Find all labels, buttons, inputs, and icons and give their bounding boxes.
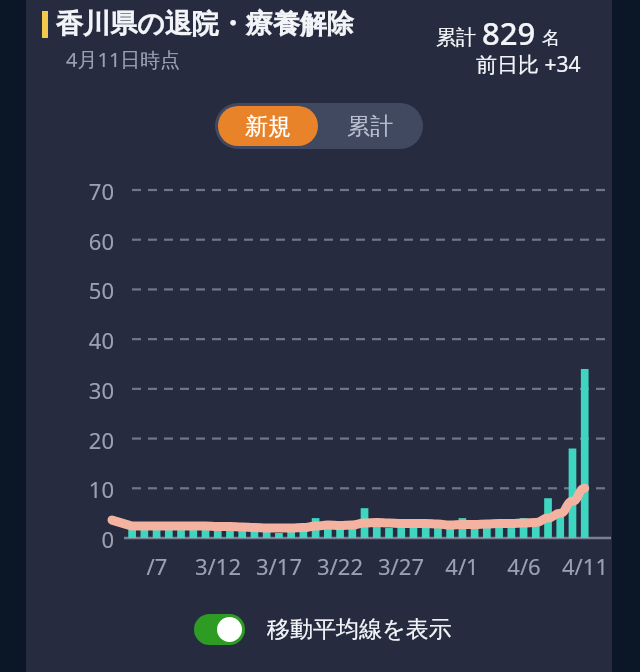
button[interactable]: 新規 <box>218 106 318 146</box>
staticText: 0 <box>62 524 114 554</box>
staticText: 4/1 <box>427 551 497 581</box>
staticText: 40 <box>62 325 114 355</box>
staticText: 香川県の退院・療養解除 <box>56 7 354 41</box>
staticText: 3/27 <box>366 551 436 581</box>
staticText: 10 <box>62 474 114 504</box>
staticText: 60 <box>62 226 114 256</box>
staticText: 累計 <box>347 112 393 141</box>
staticText: 3/22 <box>305 551 375 581</box>
staticText: 3/17 <box>244 551 314 581</box>
other: 移動平均線を表示 トグル <box>194 614 245 645</box>
staticText: 4月11日時点 <box>66 46 181 73</box>
staticText: 829 <box>482 12 536 54</box>
staticText: 4/6 <box>489 551 559 581</box>
staticText: 4/11 <box>550 551 620 581</box>
staticText: 累計 <box>436 25 476 50</box>
staticText: 新規 <box>245 112 291 141</box>
staticText: 移動平均線を表示 <box>267 615 452 644</box>
staticText: 50 <box>62 275 114 305</box>
staticText: 20 <box>62 425 114 455</box>
staticText: /7 <box>122 551 192 581</box>
staticText: 70 <box>62 176 114 206</box>
staticText: 3/12 <box>183 551 253 581</box>
button[interactable]: 移動平均線を表示 トグル <box>194 614 452 645</box>
staticText: 名 <box>542 27 560 50</box>
staticText: 前日比 +34 <box>476 50 581 79</box>
staticText: 30 <box>62 375 114 405</box>
button[interactable]: 累計 <box>320 106 420 146</box>
